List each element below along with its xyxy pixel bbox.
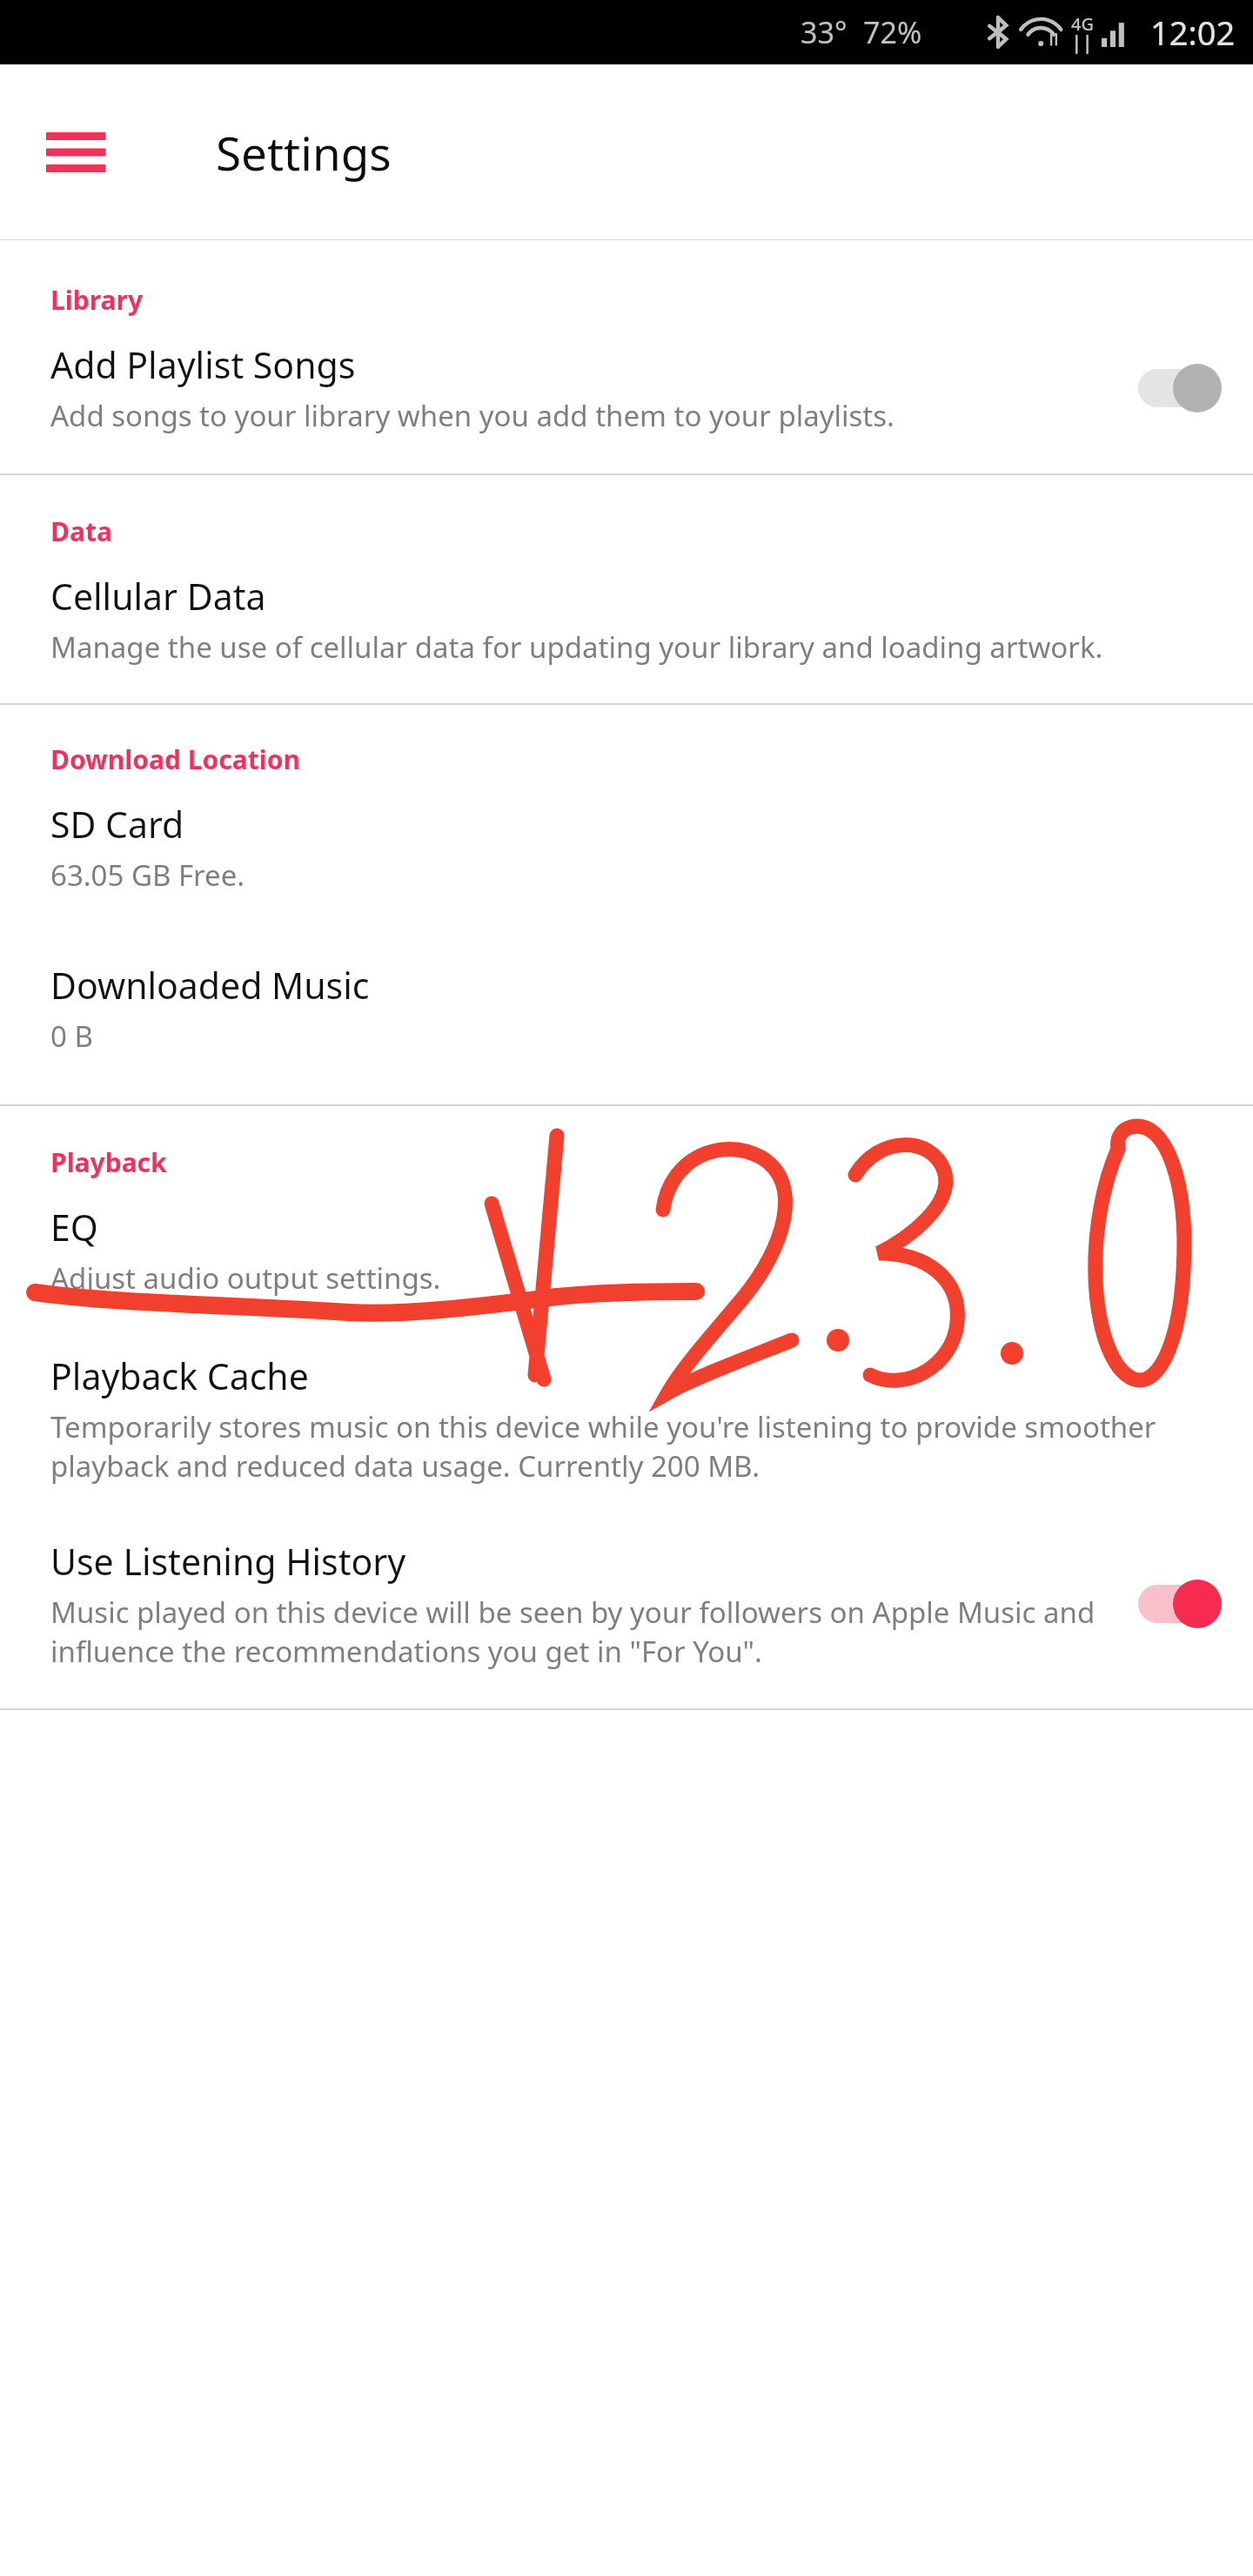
button[interactable]: Playback Cache	[0, 1348, 1253, 1507]
button[interactable]: Toggle off	[1136, 364, 1227, 413]
staticText: 63.05 GB Free.	[50, 855, 245, 895]
button[interactable]: Toggle on	[1136, 1580, 1227, 1628]
staticText: 72%	[863, 12, 922, 52]
staticText: Downloaded Music	[50, 961, 370, 1010]
staticText: Adjust audio output settings.	[50, 1258, 441, 1298]
button[interactable]: Cellular Data	[0, 549, 1253, 689]
staticText: Download Location	[50, 741, 300, 777]
staticText: Music played on this device will be seen…	[50, 1593, 1121, 1670]
staticText: Add Playlist Songs	[50, 340, 356, 389]
staticText: Playback	[50, 1144, 167, 1180]
button[interactable]: Add Playlist Songs	[0, 318, 1253, 458]
button[interactable]: Open navigation menu	[35, 111, 117, 193]
button[interactable]: Use Listening History	[0, 1533, 1253, 1693]
button[interactable]: EQ	[0, 1180, 1253, 1320]
staticText: Manage the use of cellular data for upda…	[50, 627, 1103, 667]
staticText: Playback Cache	[50, 1352, 309, 1400]
staticText: 4G	[1071, 12, 1094, 36]
staticText: Data	[50, 513, 112, 549]
button[interactable]: SD Card	[0, 777, 1253, 903]
staticText: Add songs to your library when you add t…	[50, 396, 895, 435]
staticText: 0 B	[50, 1016, 93, 1056]
staticText: Temporarily stores music on this device …	[50, 1407, 1227, 1485]
staticText: 12:02	[1150, 10, 1236, 55]
staticText: Use Listening History	[50, 1537, 406, 1586]
staticText: EQ	[50, 1203, 98, 1251]
staticText: Settings	[216, 121, 392, 184]
staticText: Library	[50, 282, 144, 318]
button[interactable]: Downloaded Music	[0, 957, 1253, 1078]
staticText: 33°	[801, 12, 848, 52]
staticText: Cellular Data	[50, 572, 266, 621]
staticText: SD Card	[50, 800, 184, 849]
